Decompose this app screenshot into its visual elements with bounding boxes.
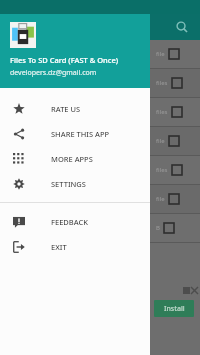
staticText: B xyxy=(156,224,160,232)
staticText: FEEDBACK xyxy=(51,217,88,227)
staticText: file xyxy=(156,137,165,145)
button[interactable]: files xyxy=(0,156,200,184)
button[interactable]: FEEDBACK xyxy=(0,209,150,234)
staticText: Files To SD Card (FAST & Once) xyxy=(10,55,119,65)
staticText: files xyxy=(156,108,168,116)
staticText: RATE US xyxy=(51,104,81,114)
button[interactable]: RATE US xyxy=(0,96,150,121)
button[interactable]: file xyxy=(0,40,200,68)
staticText: developers.dz@gmail.com xyxy=(10,68,97,78)
staticText: MORE APPS xyxy=(51,154,93,164)
staticText: EXIT xyxy=(51,242,67,252)
button[interactable]: SETTINGS xyxy=(0,171,150,196)
button[interactable]: EXIT xyxy=(0,234,150,259)
button[interactable]: MORE APPS xyxy=(0,146,150,171)
button[interactable]: files xyxy=(0,98,200,126)
staticText: file xyxy=(156,50,165,58)
button[interactable]: file xyxy=(0,185,200,213)
staticText: files xyxy=(156,79,168,87)
button[interactable]: files xyxy=(0,69,200,97)
button[interactable]: Search xyxy=(172,17,192,37)
staticText: file xyxy=(156,195,165,203)
button[interactable]: SHARE THIS APP xyxy=(0,121,150,146)
staticText: files xyxy=(156,166,168,174)
staticText: SHARE THIS APP xyxy=(51,129,110,139)
button[interactable]: Install xyxy=(154,300,194,317)
button[interactable]: file xyxy=(0,127,200,155)
staticText: SETTINGS xyxy=(51,179,86,189)
staticText: Install xyxy=(164,304,185,314)
button[interactable]: B xyxy=(0,214,200,242)
